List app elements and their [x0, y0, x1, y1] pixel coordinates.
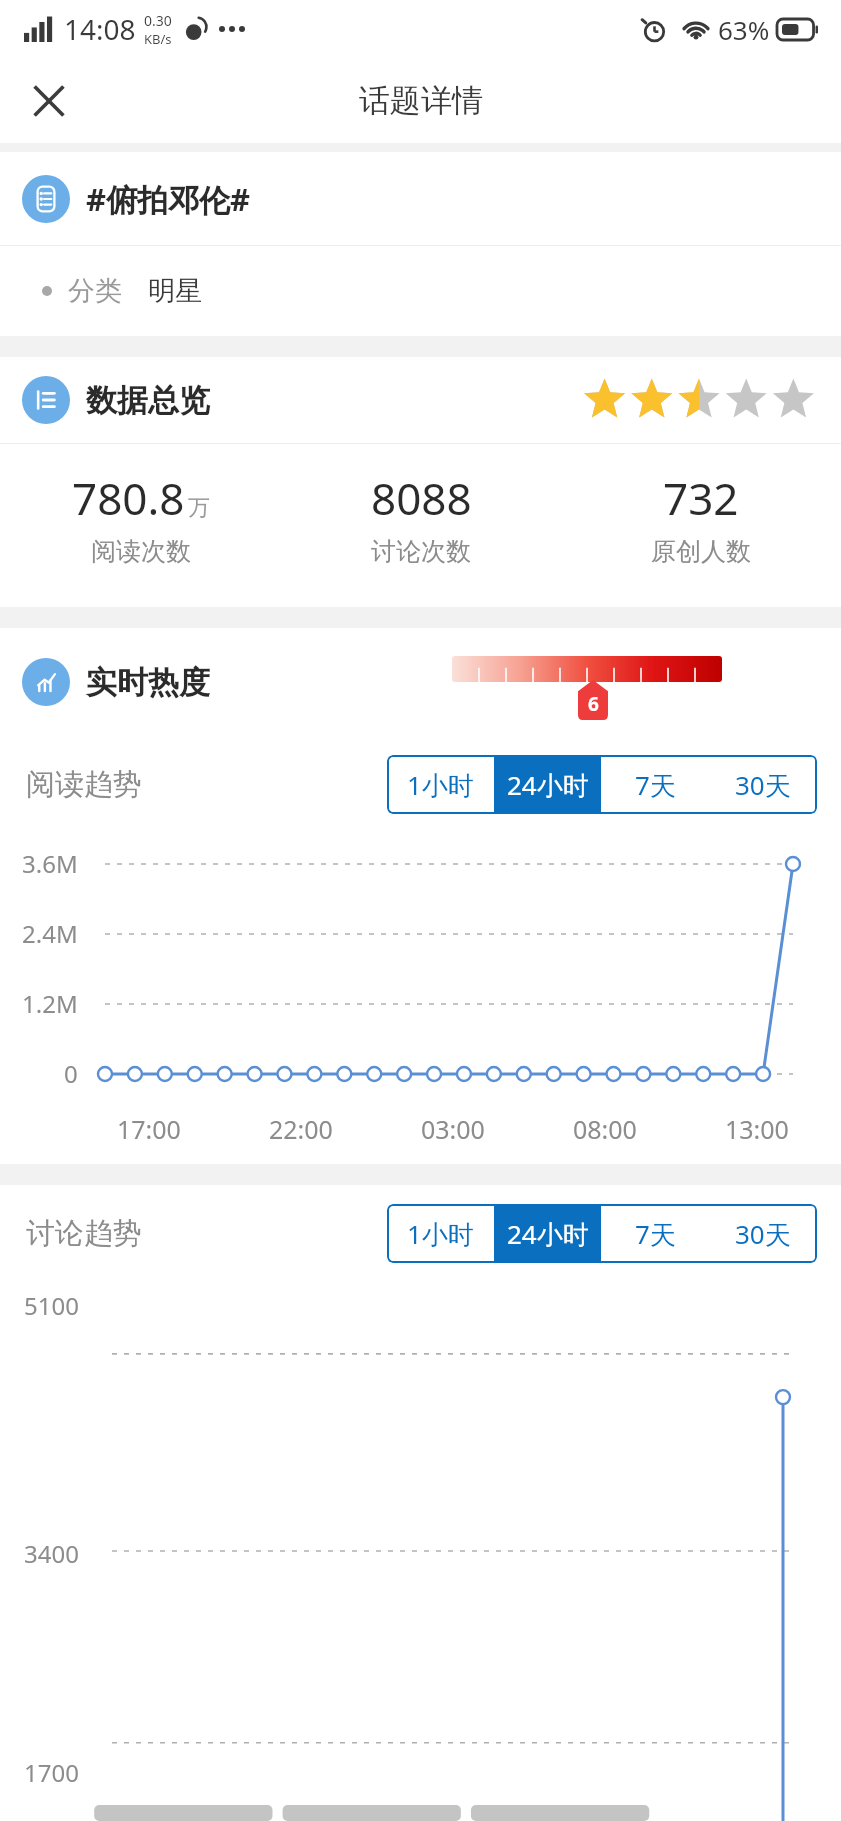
- staticText: 13:00: [725, 1112, 789, 1146]
- staticText: 万: [188, 494, 210, 522]
- staticText: 8088: [371, 468, 472, 528]
- staticText: 2.4M: [22, 917, 78, 950]
- button[interactable]: 30天: [709, 755, 817, 814]
- staticText: 24小时: [507, 767, 589, 803]
- staticText: 讨论次数: [371, 536, 471, 567]
- staticText: 原创人数: [651, 536, 751, 567]
- staticText: 讨论趋势: [26, 1215, 142, 1252]
- staticText: 实时热度: [86, 663, 210, 702]
- staticText: 22:00: [269, 1112, 333, 1146]
- staticText: 30天: [735, 767, 791, 803]
- staticText: 17:00: [117, 1112, 181, 1146]
- staticText: #俯拍邓伦#: [86, 178, 251, 220]
- staticText: 1.2M: [22, 987, 78, 1020]
- staticText: 1700: [24, 1756, 79, 1789]
- staticText: KB/s: [144, 30, 172, 48]
- staticText: 1小时: [407, 767, 474, 803]
- staticText: 数据总览: [86, 381, 210, 420]
- staticText: 阅读次数: [91, 536, 191, 567]
- staticText: 780.8: [72, 468, 185, 528]
- staticText: 0.30: [144, 11, 172, 30]
- button[interactable]: #俯拍邓伦#: [0, 152, 841, 245]
- staticText: 0: [64, 1057, 78, 1090]
- staticText: 03:00: [421, 1112, 485, 1146]
- staticText: 7天: [635, 767, 676, 803]
- button[interactable]: 24小时: [494, 755, 601, 814]
- staticText: 732: [663, 468, 739, 528]
- staticText: 3.6M: [22, 847, 78, 880]
- staticText: 5100: [24, 1289, 79, 1322]
- staticText: 阅读趋势: [26, 766, 142, 803]
- button[interactable]: 1小时: [387, 1204, 494, 1263]
- staticText: 3400: [24, 1537, 79, 1570]
- staticText: 14:08: [64, 10, 136, 48]
- staticText: 30天: [735, 1216, 791, 1252]
- staticText: 1小时: [407, 1216, 474, 1252]
- button[interactable]: 7天: [601, 1204, 709, 1263]
- staticText: 明星: [148, 274, 202, 308]
- button[interactable]: Close: [16, 68, 82, 134]
- button[interactable]: 24小时: [494, 1204, 601, 1263]
- staticText: 24小时: [507, 1216, 589, 1252]
- staticText: 08:00: [573, 1112, 637, 1146]
- staticText: 分类: [68, 274, 122, 308]
- staticText: 6: [588, 691, 599, 717]
- button[interactable]: 30天: [709, 1204, 817, 1263]
- staticText: 话题详情: [359, 81, 483, 120]
- staticText: 63%: [718, 12, 770, 47]
- button[interactable]: 1小时: [387, 755, 494, 814]
- staticText: 7天: [635, 1216, 676, 1252]
- button[interactable]: 7天: [601, 755, 709, 814]
